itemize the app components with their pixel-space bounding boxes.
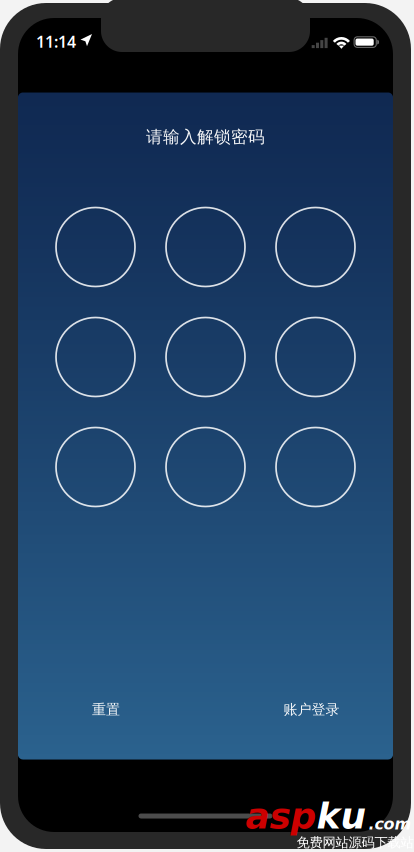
button[interactable]: Pattern dot <box>276 317 355 396</box>
staticText: asp <box>245 795 316 837</box>
staticText: 免费网站源码下载站! <box>296 833 414 851</box>
staticText: 账户登录 <box>283 701 339 718</box>
button[interactable]: Pattern dot <box>276 207 355 286</box>
button[interactable]: Pattern dot <box>276 427 355 506</box>
staticText: 11:14 <box>36 31 76 52</box>
button[interactable]: Pattern dot <box>56 207 135 286</box>
button[interactable]: Pattern dot <box>166 427 245 506</box>
staticText: ku <box>316 795 366 837</box>
button[interactable]: Pattern dot <box>56 427 135 506</box>
button[interactable]: 账户登录 <box>276 696 346 722</box>
staticText: 请输入解锁密码 <box>146 126 265 147</box>
button[interactable]: Pattern dot <box>166 317 245 396</box>
button[interactable]: Pattern dot <box>166 207 245 286</box>
staticText: .com <box>368 815 411 833</box>
staticText: 重置 <box>92 701 120 718</box>
button[interactable]: Pattern dot <box>56 317 135 396</box>
button[interactable]: 重置 <box>84 696 128 722</box>
